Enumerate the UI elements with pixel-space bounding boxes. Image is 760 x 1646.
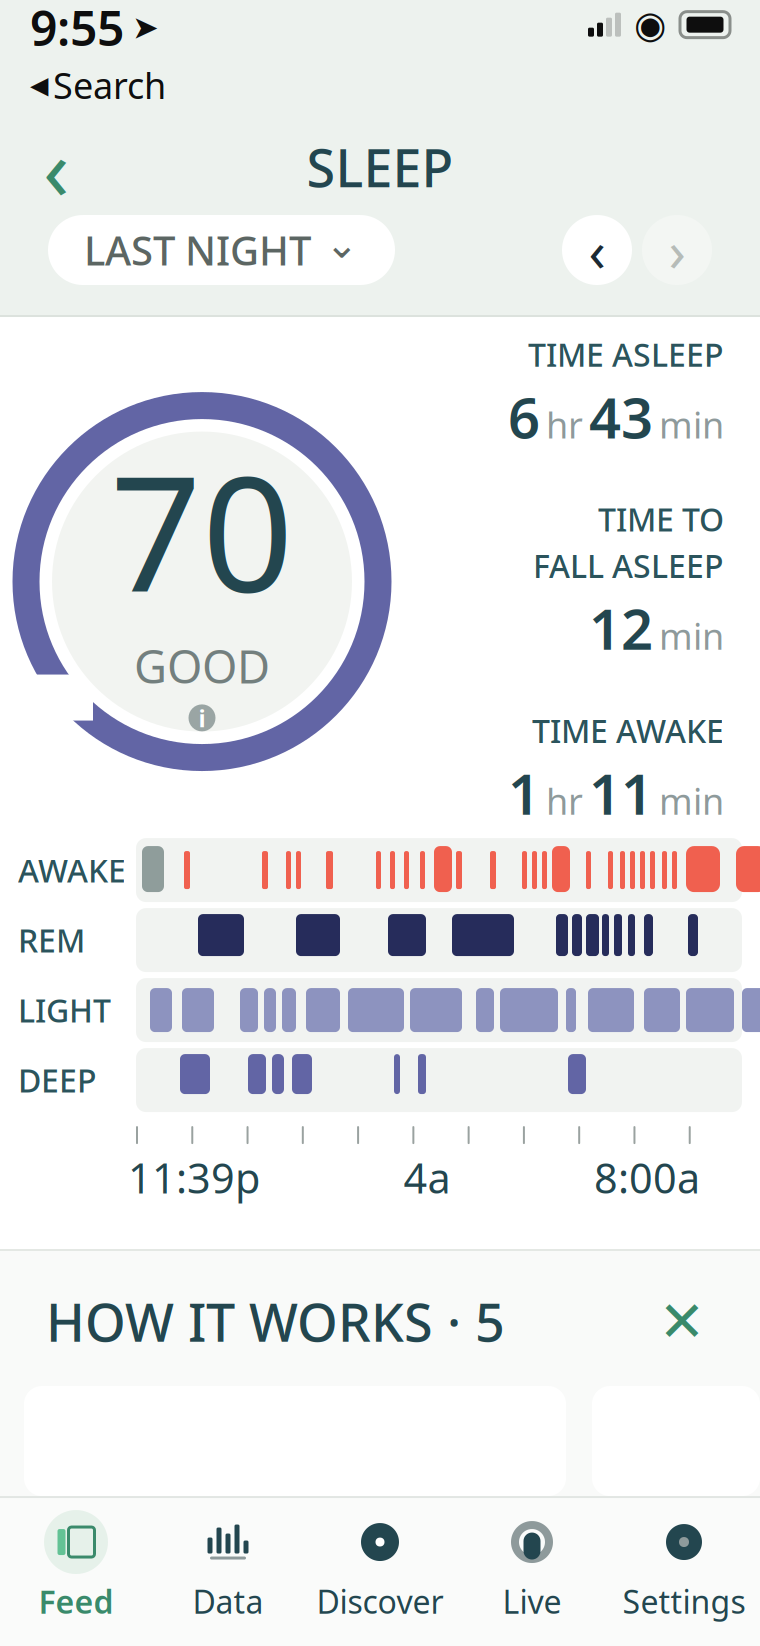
staticText: › <box>668 213 685 287</box>
staticText: ◀ <box>30 71 48 99</box>
staticText: 11 <box>589 756 653 830</box>
staticText: ✕ <box>658 1290 705 1353</box>
staticText: Live <box>502 1580 561 1622</box>
staticText: 43 <box>589 379 653 454</box>
staticText: ‹ <box>43 110 69 224</box>
staticText: ◉ <box>634 3 667 46</box>
staticText: TIME AWAKE <box>532 709 724 752</box>
staticText: 4a <box>403 1150 450 1205</box>
staticText: hr <box>546 401 583 448</box>
staticText: ‹ <box>588 213 605 287</box>
staticText: TIME TO <box>598 498 724 540</box>
button[interactable]: Sleep score information <box>180 696 224 740</box>
staticText: 9:55 <box>30 0 124 59</box>
staticText: Feed <box>38 1580 113 1622</box>
staticText: ➤ <box>132 9 159 45</box>
staticText: HOW IT WORKS · 5 <box>46 1287 505 1356</box>
staticText: DEEP <box>18 1059 97 1101</box>
button[interactable]: Previous night <box>562 215 632 285</box>
button[interactable]: Feed <box>0 1498 152 1622</box>
staticText: SLEEP <box>306 132 453 202</box>
button[interactable]: Back <box>20 131 92 203</box>
staticText: 6 <box>508 379 540 454</box>
button[interactable]: Settings <box>608 1498 760 1622</box>
staticText: LIGHT <box>18 989 111 1031</box>
staticText: Settings <box>622 1580 745 1622</box>
button[interactable]: LAST NIGHT <box>48 215 395 285</box>
staticText: min <box>659 612 724 660</box>
staticText: 12 <box>589 591 653 665</box>
staticText: Search <box>53 61 166 109</box>
staticText: 8:00a <box>594 1150 700 1205</box>
staticText: AWAKE <box>18 849 126 891</box>
staticText: 11:39p <box>128 1150 260 1205</box>
button[interactable]: Next night <box>642 215 712 285</box>
staticText: Discover <box>316 1580 443 1622</box>
staticText: min <box>659 777 724 825</box>
button[interactable]: Live <box>456 1498 608 1622</box>
staticText: 70 <box>110 423 294 636</box>
staticText: REM <box>18 919 85 961</box>
staticText: TIME ASLEEP <box>528 333 724 375</box>
staticText: 1 <box>508 756 540 830</box>
button[interactable]: Discover <box>304 1498 456 1622</box>
staticText: FALL ASLEEP <box>533 544 724 587</box>
staticText: hr <box>546 777 583 825</box>
staticText: ⌄ <box>325 221 359 267</box>
staticText: GOOD <box>134 636 270 696</box>
staticText: min <box>659 401 724 448</box>
button[interactable]: Data <box>152 1498 304 1622</box>
staticText: Data <box>192 1580 263 1622</box>
button[interactable]: Dismiss how it works <box>650 1289 714 1353</box>
staticText: i <box>198 702 205 734</box>
staticText: LAST NIGHT <box>84 223 311 277</box>
